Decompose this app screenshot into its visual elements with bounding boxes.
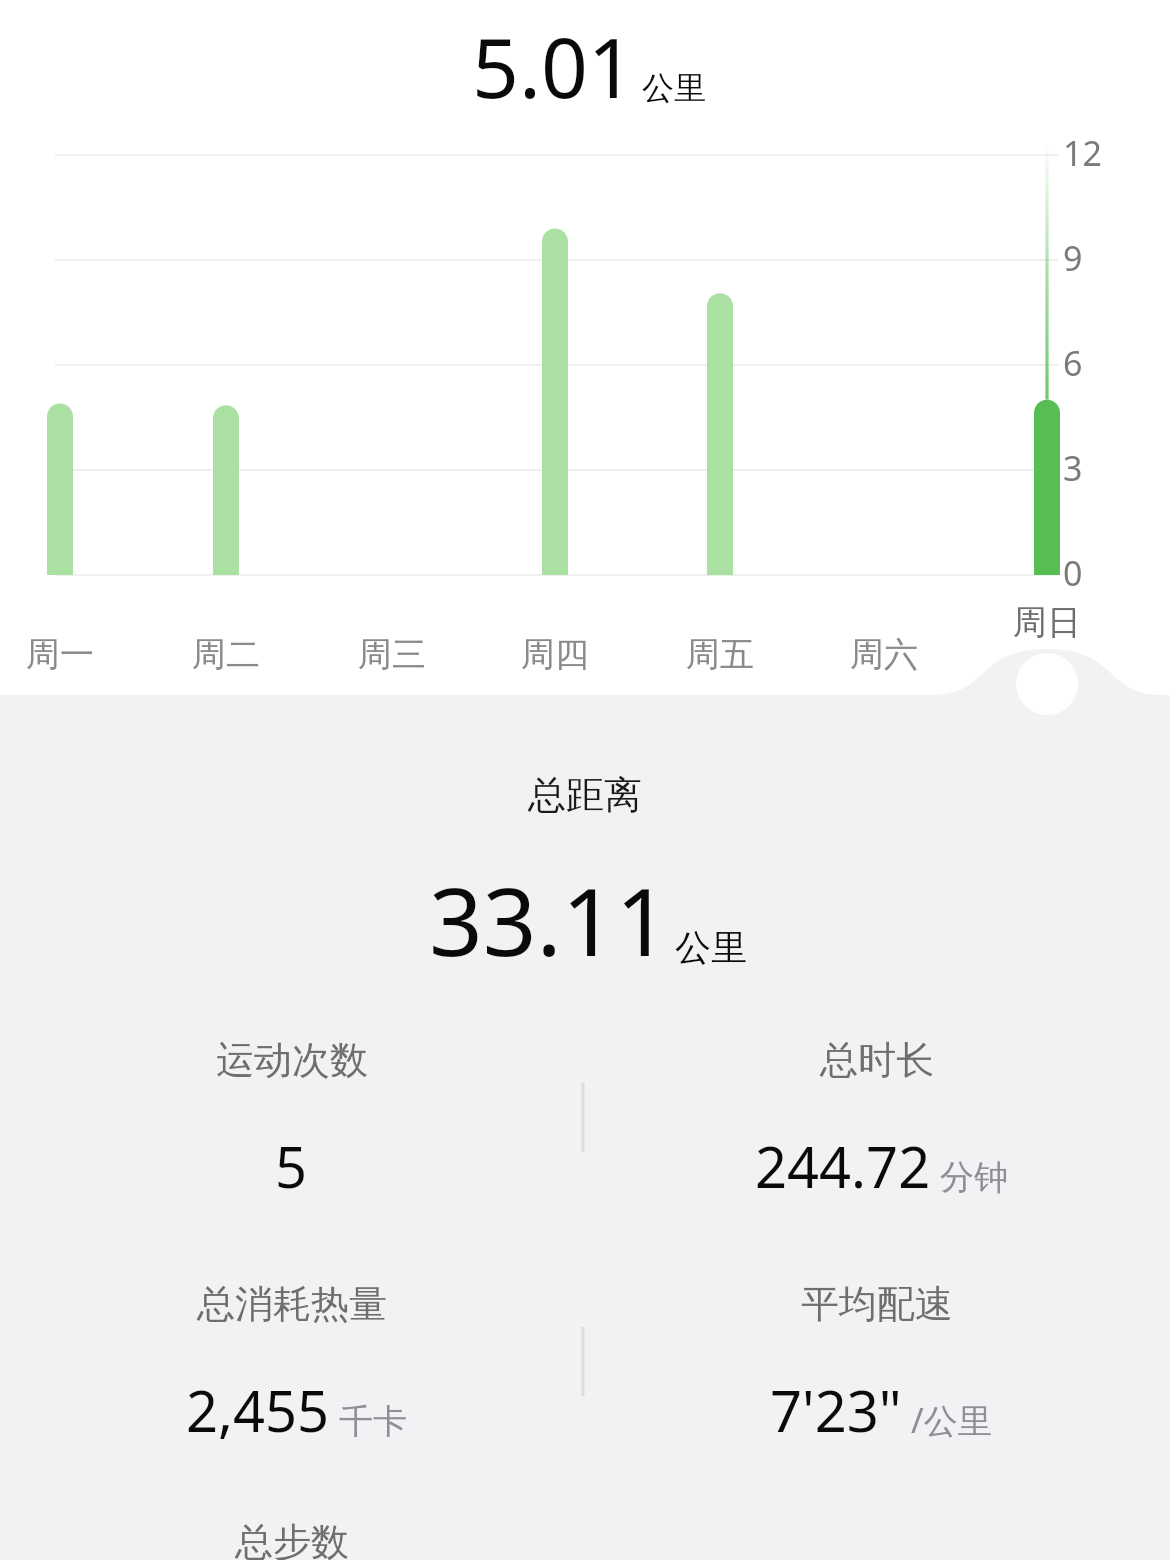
staticText: 千卡 bbox=[339, 1400, 407, 1443]
staticText: 2,455 bbox=[186, 1372, 330, 1448]
staticText: 平均配速 bbox=[801, 1280, 953, 1328]
staticText: 运动次数 bbox=[216, 1036, 368, 1084]
button[interactable]: 周三 bbox=[332, 624, 452, 684]
staticText: 7'23" bbox=[770, 1372, 902, 1448]
staticText: 3 bbox=[1063, 445, 1083, 491]
staticText: 周六 bbox=[850, 633, 918, 676]
staticText: 周三 bbox=[358, 633, 426, 676]
staticText: 公里 bbox=[675, 925, 747, 970]
staticText: 总步数 bbox=[235, 1518, 349, 1560]
staticText: 周二 bbox=[192, 633, 260, 676]
staticText: /公里 bbox=[911, 1397, 992, 1443]
staticText: 总消耗热量 bbox=[197, 1280, 387, 1328]
button[interactable]: 总步数 bbox=[0, 1498, 583, 1560]
button[interactable]: 总消耗热量 bbox=[0, 1280, 583, 1480]
button[interactable]: 周一 bbox=[0, 624, 120, 684]
staticText: 周五 bbox=[686, 633, 754, 676]
staticText: 总时长 bbox=[820, 1036, 934, 1084]
staticText: 0 bbox=[1063, 550, 1083, 596]
staticText: 周日 bbox=[1013, 601, 1081, 644]
staticText: 9 bbox=[1063, 235, 1083, 281]
button[interactable]: 总时长 bbox=[583, 1036, 1170, 1236]
staticText: 5.01 bbox=[472, 10, 635, 122]
staticText: 244.72 bbox=[755, 1128, 931, 1204]
button[interactable]: 周二 bbox=[166, 624, 286, 684]
button[interactable]: 周五 bbox=[660, 624, 780, 684]
staticText: 5 bbox=[275, 1128, 308, 1204]
staticText: 分钟 bbox=[940, 1156, 1008, 1199]
staticText: 33.11 bbox=[429, 856, 670, 984]
button[interactable]: 运动次数 bbox=[0, 1036, 583, 1236]
button[interactable]: 周六 bbox=[824, 624, 944, 684]
button[interactable]: 总距离 bbox=[0, 766, 1170, 824]
staticText: 12 bbox=[1063, 130, 1102, 176]
staticText: 总距离 bbox=[528, 771, 642, 819]
staticText: 6 bbox=[1063, 340, 1083, 386]
button[interactable]: 平均配速 bbox=[583, 1280, 1170, 1480]
button[interactable]: 周四 bbox=[495, 624, 615, 684]
staticText: 公里 bbox=[642, 68, 706, 108]
staticText: 周四 bbox=[521, 633, 589, 676]
staticText: 周一 bbox=[26, 633, 94, 676]
button[interactable]: 周日 bbox=[987, 592, 1107, 652]
